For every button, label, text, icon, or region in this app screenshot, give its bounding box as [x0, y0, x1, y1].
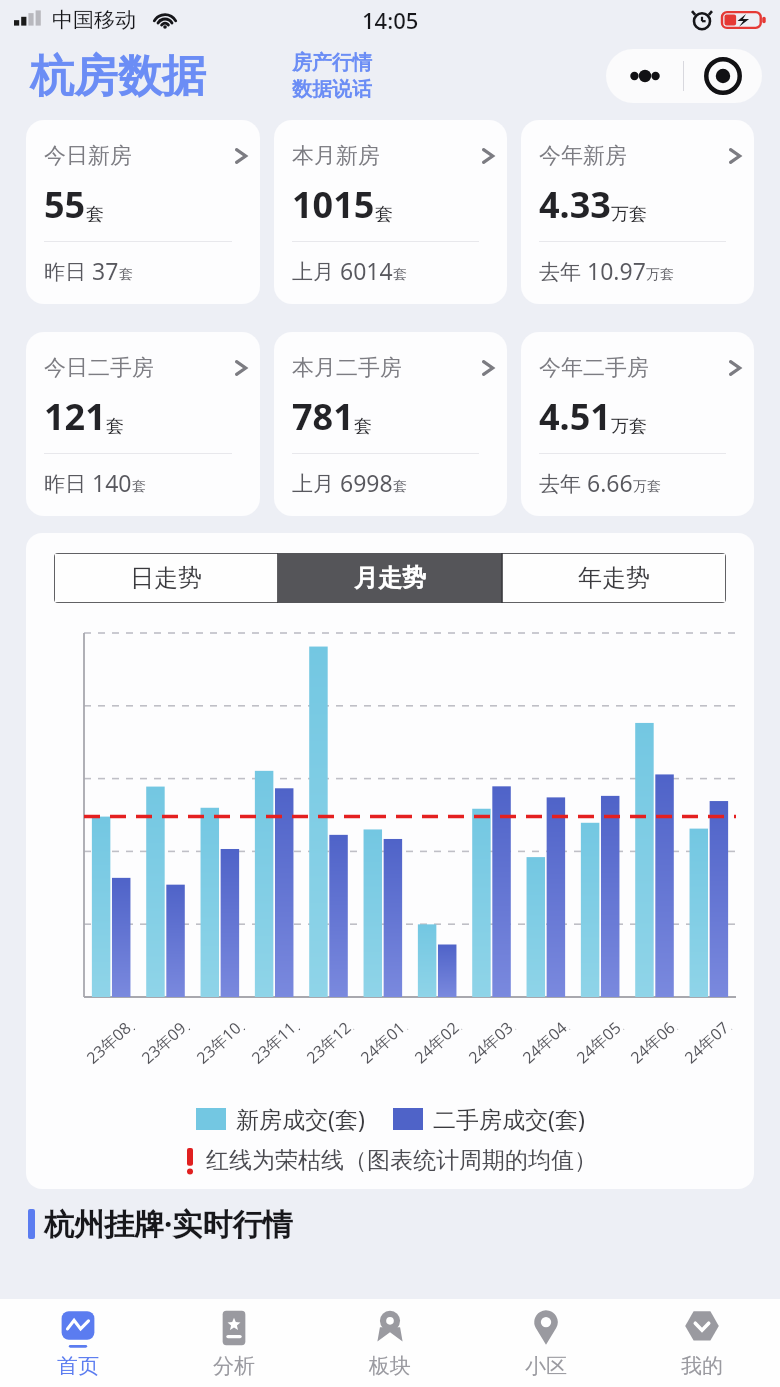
staticText: 我的 [681, 1353, 723, 1379]
staticText: 10.97 [587, 255, 646, 286]
staticText: 4.51 [539, 392, 611, 441]
button[interactable]: 首页 [0, 1299, 156, 1387]
button[interactable]: 今日二手房 [26, 332, 260, 516]
staticText: 24年04月 [518, 1016, 572, 1068]
staticText: 板块 [369, 1353, 411, 1379]
staticText: 23年11月 [247, 1015, 302, 1069]
button[interactable]: 我的 [624, 1299, 780, 1387]
staticText: 新房成交(套) [236, 1103, 365, 1134]
staticText: 昨日 [44, 469, 92, 498]
staticText: 1015 [292, 180, 375, 229]
button[interactable]: 月走势 [278, 553, 502, 603]
button[interactable]: 板块 [312, 1299, 468, 1387]
staticText: 14:05 [362, 5, 419, 35]
staticText: 6.66 [587, 467, 633, 498]
button[interactable]: 本月新房 [274, 120, 507, 304]
staticText: 昨日 [44, 257, 92, 286]
staticText: 去年 [539, 257, 587, 286]
staticText: 4.33 [539, 180, 611, 229]
staticText: 套 [86, 203, 104, 226]
staticText: 套 [119, 266, 133, 284]
staticText: 套 [132, 478, 146, 496]
staticText: 杭州挂牌·实时行情 [44, 1203, 293, 1244]
staticText: 万套 [633, 478, 661, 496]
button[interactable]: 日走势 [54, 553, 278, 603]
staticText: 23年10月 [192, 1015, 247, 1069]
staticText: 去年 [539, 469, 587, 498]
staticText: 分析 [213, 1353, 255, 1379]
staticText: 杭房数据 [30, 49, 206, 104]
staticText: 23年12月 [302, 1016, 356, 1068]
staticText: 24年02月 [410, 1016, 464, 1068]
staticText: 55 [44, 180, 86, 229]
staticText: 24年03月 [464, 1016, 518, 1068]
staticText: 上月 [292, 257, 340, 286]
staticText: 套 [393, 478, 407, 496]
button[interactable]: Target [684, 49, 762, 103]
staticText: 红线为荣枯线（图表统计周期的均值） [206, 1146, 597, 1175]
staticText: 套 [393, 266, 407, 284]
staticText: 24年01月 [356, 1016, 410, 1068]
staticText: 今日二手房 [44, 354, 154, 382]
staticText: 小区 [525, 1353, 567, 1379]
staticText: 6014 [340, 255, 393, 286]
staticText: 23年09月 [137, 1015, 192, 1069]
button[interactable]: More options [606, 49, 683, 103]
staticText: 24年06月 [626, 1016, 680, 1068]
button[interactable]: 今年新房 [521, 120, 754, 304]
button[interactable]: 本月二手房 [274, 332, 507, 516]
staticText: 781 [292, 392, 354, 441]
staticText: 140 [92, 467, 132, 498]
staticText: 中国移动 [52, 7, 136, 33]
staticText: 6998 [340, 467, 393, 498]
staticText: 121 [44, 392, 106, 441]
staticText: 23年08月 [82, 1015, 137, 1069]
staticText: 套 [354, 415, 372, 438]
staticText: 上月 [292, 469, 340, 498]
button[interactable]: 今年二手房 [521, 332, 754, 516]
staticText: 万套 [646, 266, 674, 284]
staticText: 万套 [611, 415, 647, 438]
staticText: 二手房成交(套) [433, 1103, 585, 1134]
staticText: 首页 [57, 1353, 99, 1379]
button[interactable]: 分析 [156, 1299, 312, 1387]
staticText: 本月二手房 [292, 354, 402, 382]
staticText: 年走势 [578, 563, 650, 593]
button[interactable]: 年走势 [502, 553, 726, 603]
staticText: 月走势 [354, 563, 426, 593]
staticText: 数据说话 [292, 77, 372, 102]
staticText: 24年07月 [680, 1016, 734, 1068]
staticText: 今日新房 [44, 142, 132, 170]
staticText: 今年新房 [539, 142, 627, 170]
staticText: 日走势 [130, 563, 202, 593]
button[interactable]: 今日新房 [26, 120, 260, 304]
staticText: 本月新房 [292, 142, 380, 170]
staticText: 万套 [611, 203, 647, 226]
staticText: 套 [106, 415, 124, 438]
staticText: 房产行情 [292, 50, 372, 75]
staticText: 今年二手房 [539, 354, 649, 382]
staticText: 套 [375, 203, 393, 226]
staticText: 37 [92, 255, 119, 286]
button[interactable]: 小区 [468, 1299, 624, 1387]
staticText: 24年05月 [572, 1016, 626, 1068]
